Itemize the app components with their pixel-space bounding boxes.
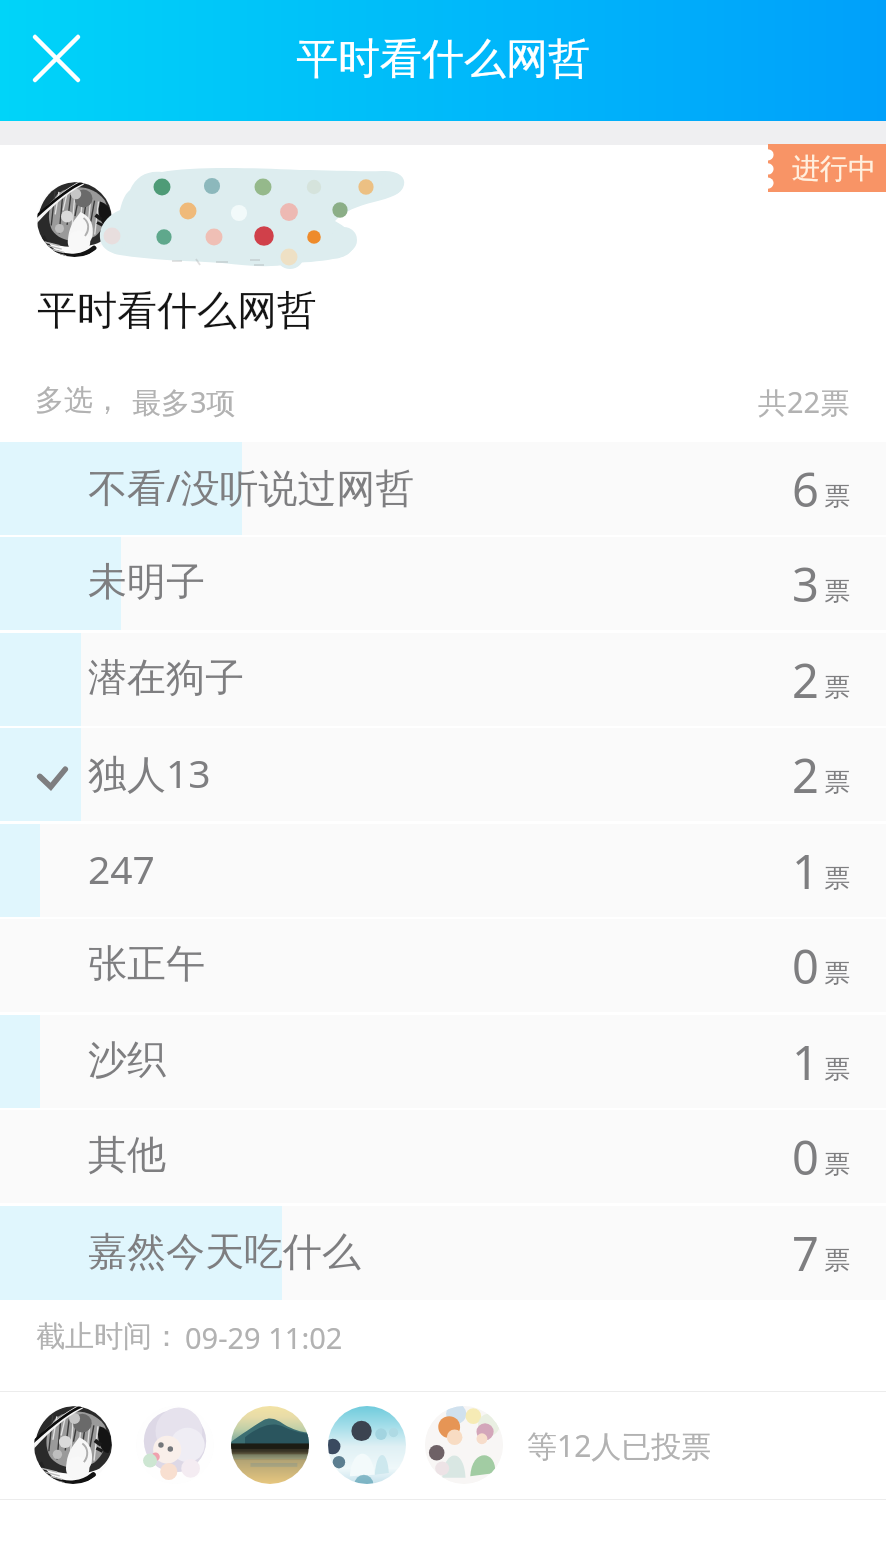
staticText: 6	[792, 457, 819, 521]
button[interactable]: 不看/没听说过网哲	[0, 442, 886, 535]
staticText: 票	[824, 671, 850, 704]
staticText: 平时看什么网哲	[37, 285, 317, 335]
staticText: 多选，	[35, 382, 122, 419]
staticText: 票	[824, 957, 850, 990]
staticText: 2	[792, 743, 819, 807]
button[interactable]: Close	[22, 24, 91, 93]
button[interactable]: 等12人已投票	[0, 1392, 886, 1499]
button[interactable]: 进行中	[768, 144, 886, 192]
staticText: 票	[824, 862, 850, 895]
staticText: 票	[824, 1244, 850, 1277]
staticText: 未明子	[88, 557, 205, 606]
staticText: 票	[824, 575, 850, 608]
staticText: 等12人已投票	[527, 1425, 712, 1466]
staticText: 票	[824, 766, 850, 799]
staticText: 截止时间：	[36, 1318, 181, 1355]
staticText: 平时看什么网哲	[296, 33, 590, 86]
button[interactable]: 潜在狗子	[0, 633, 886, 726]
staticText: 独人13	[88, 746, 211, 799]
staticText: 票	[824, 480, 850, 513]
staticText: 09-29 11:02	[185, 1318, 343, 1357]
button[interactable]: 其他	[0, 1110, 886, 1203]
staticText: 最多3项	[132, 382, 236, 422]
staticText: 沙织	[88, 1035, 166, 1084]
staticText: 0	[792, 934, 819, 998]
button[interactable]: 247	[0, 824, 886, 917]
staticText: 进行中	[792, 151, 876, 186]
button[interactable]: 独人13	[0, 728, 886, 821]
staticText: 票	[824, 1148, 850, 1181]
staticText: 1	[792, 839, 819, 903]
staticText: 0	[792, 1125, 819, 1189]
staticText: 张正午	[88, 939, 205, 988]
button[interactable]: 张正午	[0, 919, 886, 1012]
staticText: 7	[792, 1221, 819, 1285]
button[interactable]: 沙织	[0, 1015, 886, 1108]
staticText: 潜在狗子	[88, 653, 244, 702]
staticText: 票	[824, 1053, 850, 1086]
button[interactable]: 嘉然今天吃什么	[0, 1206, 886, 1300]
button[interactable]: 未明子	[0, 537, 886, 630]
staticText: 247	[88, 842, 155, 895]
staticText: 3	[792, 552, 819, 616]
staticText: 2	[792, 648, 819, 712]
staticText: 共22票	[758, 382, 850, 422]
staticText: 其他	[88, 1130, 166, 1179]
staticText: 1	[792, 1030, 819, 1094]
staticText: 嘉然今天吃什么	[88, 1227, 361, 1276]
staticText: 不看/没听说过网哲	[88, 460, 415, 513]
